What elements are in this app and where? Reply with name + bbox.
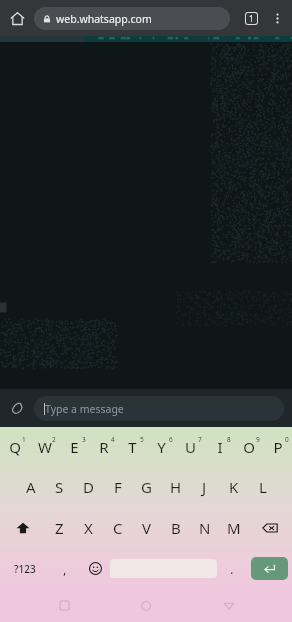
button[interactable]: Home <box>0 1 34 35</box>
staticText: B <box>171 518 181 538</box>
button[interactable]: Enter <box>251 557 288 580</box>
staticText: W <box>38 437 52 457</box>
staticText: Z <box>55 518 64 538</box>
button[interactable]: More options <box>264 5 290 31</box>
button[interactable]: K <box>219 467 248 507</box>
staticText: V <box>142 518 152 538</box>
button[interactable]: G <box>132 467 161 507</box>
staticText: O <box>243 437 255 457</box>
staticText: 6 <box>169 435 173 444</box>
button[interactable]: Emoji <box>80 548 110 589</box>
button[interactable]: B <box>161 507 190 548</box>
button[interactable]: Tabs <box>238 5 264 31</box>
button[interactable]: , <box>50 548 80 589</box>
button[interactable]: Shift <box>0 507 45 548</box>
staticText: 2 <box>52 435 56 444</box>
button[interactable]: V <box>132 507 161 548</box>
button[interactable]: Back <box>210 589 248 622</box>
staticText: S <box>55 477 64 497</box>
staticText: L <box>259 477 267 497</box>
staticText: 0 <box>285 435 289 444</box>
staticText: Y <box>157 437 166 457</box>
staticText: E <box>70 437 79 457</box>
button[interactable]: J <box>190 467 219 507</box>
staticText: I <box>217 437 223 457</box>
staticText: R <box>99 437 109 457</box>
button[interactable]: E <box>60 427 89 467</box>
staticText: 3 <box>82 435 86 444</box>
staticText: U <box>185 437 196 457</box>
staticText: Type a message <box>45 402 124 416</box>
button[interactable]: F <box>103 467 132 507</box>
staticText: . <box>230 560 234 578</box>
staticText: 1 <box>249 13 254 24</box>
staticText: F <box>114 477 122 497</box>
button[interactable]: N <box>190 507 219 548</box>
button[interactable]: W <box>30 427 60 467</box>
button[interactable]: Home <box>127 589 165 622</box>
staticText: P <box>273 437 283 457</box>
button[interactable]: L <box>248 467 277 507</box>
staticText: 4 <box>111 435 115 444</box>
button[interactable]: Y <box>147 427 176 467</box>
button[interactable]: ?123 <box>0 548 50 589</box>
staticText: X <box>84 518 93 538</box>
staticText: 9 <box>256 435 260 444</box>
button[interactable]: I <box>205 427 234 467</box>
staticText: G <box>141 477 152 497</box>
staticText: H <box>170 477 182 497</box>
button[interactable]: U <box>176 427 205 467</box>
button[interactable]: A <box>16 467 45 507</box>
staticText: J <box>202 477 207 497</box>
button[interactable]: Z <box>45 507 74 548</box>
button[interactable]: O <box>234 427 263 467</box>
staticText: 8 <box>227 435 231 444</box>
staticText: K <box>229 477 239 497</box>
staticText: T <box>128 437 137 457</box>
button[interactable]: C <box>103 507 132 548</box>
button[interactable]: Attach <box>0 391 34 425</box>
button[interactable]: Backspace <box>248 507 292 548</box>
button[interactable]: H <box>161 467 190 507</box>
button[interactable]: T <box>118 427 147 467</box>
button[interactable]: P <box>263 427 292 467</box>
button[interactable]: X <box>74 507 103 548</box>
button[interactable]: Type a message <box>34 396 284 421</box>
staticText: N <box>199 518 211 538</box>
button[interactable]: R <box>89 427 118 467</box>
button[interactable]: Recent apps <box>45 589 83 622</box>
button[interactable]: D <box>74 467 103 507</box>
staticText: M <box>227 518 241 538</box>
staticText: 1 <box>22 435 26 444</box>
button[interactable]: Q <box>0 427 30 467</box>
staticText: C <box>113 518 123 538</box>
button[interactable]: M <box>219 507 248 548</box>
staticText: D <box>83 477 94 497</box>
staticText: ?123 <box>14 562 36 576</box>
staticText: 7 <box>198 435 202 444</box>
button[interactable]: web.whatsapp.com <box>34 7 230 30</box>
staticText: , <box>63 560 67 578</box>
staticText: A <box>26 477 36 497</box>
staticText: 5 <box>140 435 144 444</box>
button[interactable]: . <box>217 548 247 589</box>
button[interactable]: S <box>45 467 74 507</box>
staticText: web.whatsapp.com <box>56 12 152 26</box>
staticText: Q <box>9 437 21 457</box>
